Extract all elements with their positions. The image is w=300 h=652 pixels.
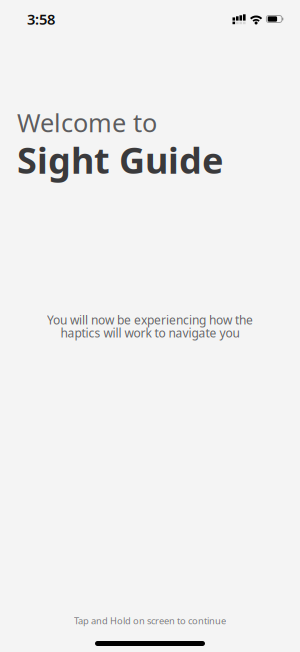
staticText: haptics will work to navigate you [60,325,239,341]
staticText: You will now be experiencing how the [47,312,253,328]
button[interactable]: Tap and Hold on screen to continue [0,0,300,652]
staticText: Sight Guide [17,136,223,184]
staticText: Tap and Hold on screen to continue [74,614,226,627]
staticText: 3:58 [27,9,55,29]
staticText: Welcome to [17,105,157,139]
